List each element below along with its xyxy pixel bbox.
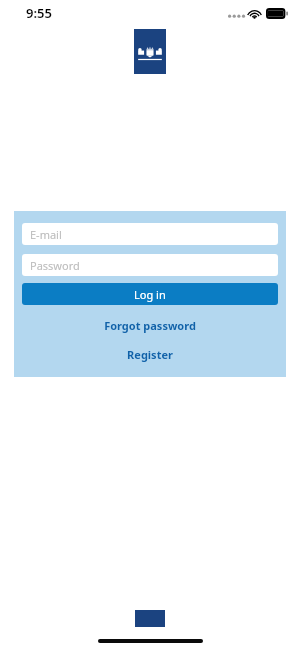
- staticText: Forgot password: [104, 318, 196, 333]
- button[interactable]: Log in: [22, 283, 278, 305]
- staticText: Register: [127, 347, 173, 362]
- button[interactable]: Register: [22, 344, 278, 365]
- staticText: 9:55: [26, 4, 52, 22]
- staticText: E-mail: [30, 227, 62, 242]
- staticText: Log in: [134, 287, 166, 302]
- staticText: Password: [30, 258, 80, 273]
- button[interactable]: Password: [22, 254, 278, 276]
- button[interactable]: Forgot password: [22, 315, 278, 336]
- button[interactable]: E-mail: [22, 223, 278, 245]
